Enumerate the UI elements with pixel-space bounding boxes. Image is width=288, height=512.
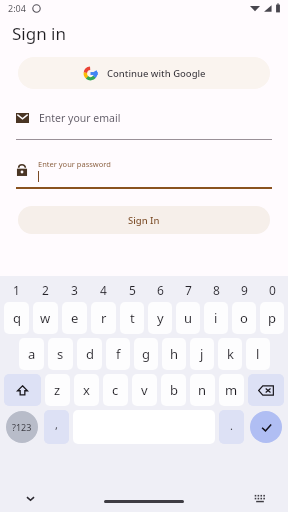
button[interactable]: Enter your password [16,155,272,185]
button[interactable]: Enter [250,411,282,443]
button[interactable]: Continue with Google [18,57,270,89]
button[interactable]: c [103,374,128,406]
staticText: a [28,345,36,363]
staticText: n [198,381,207,399]
staticText: 2:04 [8,2,26,14]
button[interactable]: g [134,338,158,370]
staticText: j [200,345,204,363]
button[interactable]: z [45,374,70,406]
staticText: q [13,309,21,327]
staticText: Sign in [12,22,66,45]
button[interactable]: j [190,338,214,370]
button[interactable]: 9 [230,280,258,300]
staticText: Continue with Google [107,67,206,80]
button[interactable]: q [4,302,29,334]
staticText: 1 [13,282,20,298]
button[interactable]: f [106,338,130,370]
staticText: m [225,381,238,399]
button[interactable]: ?123 [6,411,38,443]
button[interactable]: k [218,338,242,370]
staticText: e [71,309,79,327]
staticText: f [116,345,121,363]
staticText: k [227,345,234,363]
button[interactable]: u [176,302,200,334]
button[interactable]: n [190,374,215,406]
staticText: b [170,381,178,399]
staticText: Enter your email [39,111,121,125]
button[interactable]: 1 [2,280,31,300]
button[interactable]: 4 [89,280,118,300]
staticText: 0 [269,282,276,298]
button[interactable]: x [74,374,99,406]
staticText: u [184,309,193,327]
staticText: Enter your password [38,159,111,169]
button[interactable]: 5 [118,280,146,300]
staticText: h [170,345,179,363]
button[interactable]: p [260,302,284,334]
button[interactable]: i [204,302,228,334]
staticText: i [214,309,218,327]
staticText: 9 [241,282,248,298]
button[interactable]: Shift [4,374,41,406]
button[interactable]: Sign In [18,206,270,234]
staticText: 8 [213,282,220,298]
staticText: o [240,309,248,327]
button[interactable]: 0 [258,280,286,300]
staticText: 6 [157,282,164,298]
button[interactable]: 6 [146,280,174,300]
staticText: v [141,381,148,399]
staticText: p [268,309,276,327]
button[interactable]: Enter your email [16,105,272,131]
button[interactable]: y [148,302,172,334]
button[interactable]: d [77,338,102,370]
button[interactable]: 8 [202,280,230,300]
staticText: . [230,418,233,433]
staticText: t [130,309,135,327]
button[interactable]: 2 [31,280,60,300]
button[interactable]: s [48,338,73,370]
staticText: g [142,345,150,363]
staticText: 4 [100,282,107,298]
staticText: x [83,381,90,399]
button[interactable]: r [91,302,116,334]
button[interactable]: . [219,410,244,444]
staticText: 2 [42,282,49,298]
button[interactable]: Hide keyboard [20,488,40,508]
staticText: w [40,309,51,327]
staticText: Sign In [128,214,160,227]
button[interactable]: t [120,302,144,334]
button[interactable]: e [62,302,87,334]
staticText: 7 [185,282,192,298]
button[interactable]: v [132,374,157,406]
staticText: c [112,381,119,399]
button[interactable]: o [232,302,256,334]
button[interactable]: 7 [174,280,202,300]
staticText: z [54,381,61,399]
button[interactable]: Backspace [248,374,284,406]
button[interactable]: m [219,374,244,406]
staticText: y [157,309,164,327]
staticText: ?123 [12,421,32,433]
button[interactable]: w [33,302,58,334]
button[interactable]: 3 [60,280,89,300]
staticText: r [101,309,107,327]
staticText: l [256,345,260,363]
button[interactable]: a [19,338,44,370]
staticText: d [86,345,94,363]
staticText: 5 [129,282,136,298]
button[interactable]: h [162,338,186,370]
staticText: s [57,345,64,363]
staticText: 3 [71,282,78,298]
button[interactable]: , [44,410,69,444]
staticText: , [55,417,58,432]
button[interactable]: l [246,338,270,370]
button[interactable]: Switch keyboard [250,488,270,508]
button[interactable]: b [161,374,186,406]
